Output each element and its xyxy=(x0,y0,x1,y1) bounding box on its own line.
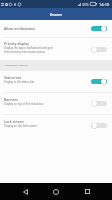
button[interactable]: Banners xyxy=(0,93,112,114)
button[interactable]: Lock screen xyxy=(0,115,112,136)
button[interactable]: Home xyxy=(49,183,63,200)
staticText: them priority interruption status xyxy=(4,50,45,54)
button[interactable]: Allow notifications xyxy=(0,20,112,37)
staticText: 14:10 xyxy=(99,2,110,7)
button[interactable]: Back xyxy=(18,183,32,200)
staticText: Allow notifications xyxy=(4,26,35,31)
staticText: Display the app's notifications and give xyxy=(4,46,54,50)
staticText: 35% xyxy=(82,2,89,7)
staticText: Notification method xyxy=(4,63,28,66)
staticText: Lock screen xyxy=(4,119,24,124)
staticText: Browser xyxy=(50,13,63,17)
staticText: Status bar xyxy=(4,75,22,80)
staticText: Priority display xyxy=(4,41,30,46)
staticText: Banners xyxy=(4,97,19,102)
button[interactable]: Priority display xyxy=(0,38,112,60)
staticText: Display in the status bar xyxy=(4,80,35,84)
staticText: Display on the lock screen xyxy=(4,124,37,128)
button[interactable]: Recent apps xyxy=(80,183,94,200)
button[interactable]: Status bar xyxy=(0,71,112,92)
staticText: Display on top of the status bar xyxy=(4,102,44,106)
